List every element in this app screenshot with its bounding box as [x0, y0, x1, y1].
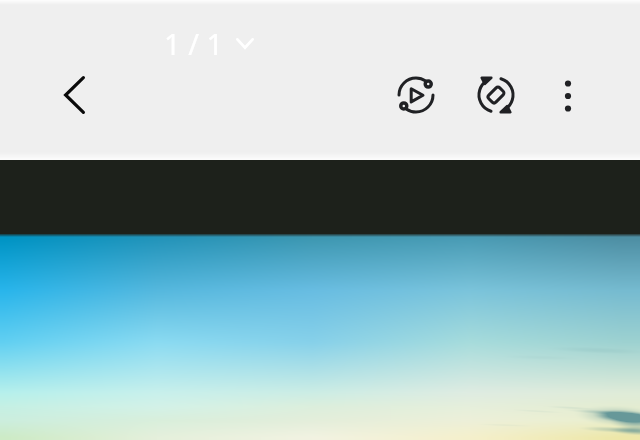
- button[interactable]: 1 / 1: [160, 20, 258, 67]
- button[interactable]: Motion photo: [392, 71, 440, 119]
- button[interactable]: Rotate: [472, 71, 520, 119]
- staticText: 1 / 1: [164, 24, 224, 63]
- button[interactable]: Back: [50, 71, 98, 119]
- button[interactable]: More options: [544, 72, 592, 120]
